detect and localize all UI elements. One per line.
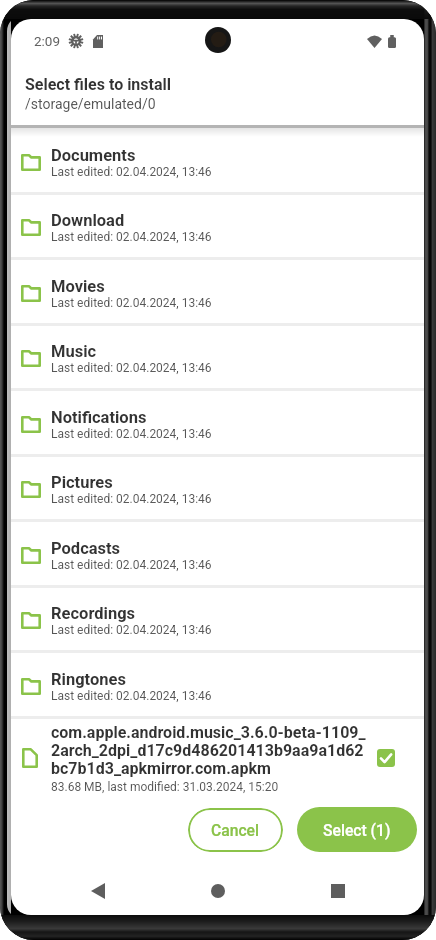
button[interactable]: Select (1) — [297, 807, 417, 852]
staticText: Music — [51, 342, 97, 361]
staticText: Documents — [51, 146, 136, 165]
staticText: Last edited: 02.04.2024, 13:46 — [51, 361, 212, 375]
button[interactable]: Movies — [11, 260, 424, 326]
button[interactable]: Podcasts — [11, 522, 424, 588]
staticText: Select files to install — [25, 75, 172, 94]
staticText: 2:09 — [34, 33, 61, 49]
staticText: Download — [51, 211, 125, 230]
staticText: Last edited: 02.04.2024, 13:46 — [51, 427, 212, 441]
staticText: Last edited: 02.04.2024, 13:46 — [51, 623, 212, 637]
button[interactable]: Documents — [11, 129, 424, 195]
staticText: Cancel — [211, 821, 260, 839]
staticText: Podcasts — [51, 539, 121, 558]
button[interactable]: Recordings — [11, 588, 424, 653]
staticText: Last edited: 02.04.2024, 13:46 — [51, 689, 212, 703]
button[interactable]: Ringtones — [11, 653, 424, 719]
staticText: com.apple.android.music_3.6.0-beta-1109_… — [51, 723, 370, 778]
staticText: Pictures — [51, 473, 113, 492]
staticText: Recordings — [51, 604, 136, 623]
staticText: Last edited: 02.04.2024, 13:46 — [51, 296, 212, 310]
staticText: Last edited: 02.04.2024, 13:46 — [51, 230, 212, 244]
button[interactable]: Cancel — [188, 808, 283, 852]
button[interactable]: Download — [11, 195, 424, 260]
staticText: Last edited: 02.04.2024, 13:46 — [51, 165, 212, 179]
staticText: Last edited: 02.04.2024, 13:46 — [51, 558, 212, 572]
staticText: Movies — [51, 277, 105, 296]
button[interactable]: Selected — [377, 749, 395, 767]
button[interactable]: Pictures — [11, 457, 424, 522]
button[interactable]: com.apple.android.music_3.6.0-beta-1109_… — [11, 719, 424, 797]
button[interactable]: Music — [11, 326, 424, 391]
staticText: Select (1) — [323, 821, 391, 839]
button[interactable]: Back — [74, 866, 122, 915]
staticText: /storage/emulated/0 — [25, 96, 156, 112]
button[interactable]: Home — [194, 866, 242, 915]
button[interactable]: Recents — [314, 866, 362, 915]
button[interactable]: Notifications — [11, 391, 424, 457]
staticText: Last edited: 02.04.2024, 13:46 — [51, 492, 212, 506]
staticText: 83.68 MB, last modified: 31.03.2024, 15:… — [51, 780, 279, 794]
staticText: Ringtones — [51, 670, 126, 689]
staticText: Notifications — [51, 408, 147, 427]
